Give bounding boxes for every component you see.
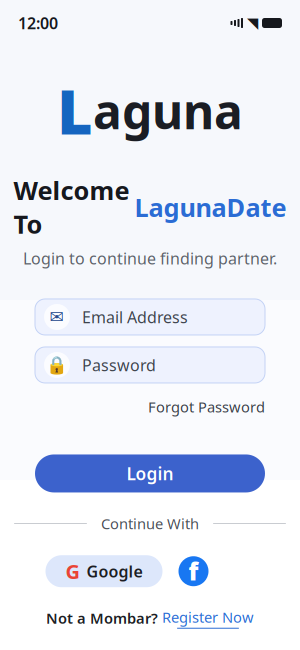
staticText: Forgot Password: [148, 397, 265, 416]
staticText: Register Now: [162, 607, 254, 627]
staticText: Google: [86, 561, 142, 582]
button[interactable]: 🔒: [35, 347, 265, 383]
button[interactable]: Continue with Facebook: [178, 555, 208, 587]
staticText: Continue With: [101, 514, 199, 533]
staticText: Email Address: [82, 306, 188, 328]
staticText: G: [65, 558, 79, 584]
staticText: ◥: [247, 15, 258, 31]
button[interactable]: Login: [35, 454, 265, 492]
staticText: Login to continue finding partner.: [23, 248, 277, 269]
staticText: LagunaDate: [134, 190, 286, 224]
staticText: 12:00: [18, 12, 58, 34]
staticText: Welcome To: [13, 173, 129, 241]
staticText: 🔒: [46, 355, 68, 375]
staticText: Login: [126, 462, 173, 485]
staticText: Not a Mombar?: [46, 608, 158, 628]
button[interactable]: Register Now: [162, 607, 254, 629]
staticText: f: [188, 555, 198, 587]
button[interactable]: ✉: [35, 299, 265, 335]
staticText: ✉: [49, 307, 64, 327]
button[interactable]: G: [45, 555, 162, 587]
staticText: Password: [82, 354, 156, 376]
button[interactable]: Forgot Password: [148, 397, 265, 416]
staticText: L: [57, 70, 93, 151]
staticText: aguna: [93, 79, 243, 143]
